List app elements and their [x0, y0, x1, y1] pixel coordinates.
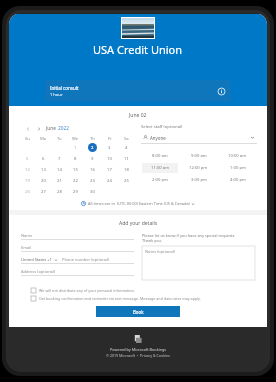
button[interactable]: 17 [105, 165, 114, 174]
button[interactable]: 16 [88, 165, 97, 174]
staticText: 29 [73, 189, 78, 195]
button[interactable]: Book [96, 306, 180, 317]
staticText: 11 [124, 156, 129, 162]
button[interactable]: 29 [71, 187, 80, 196]
button[interactable]: 11:00 am [142, 163, 178, 173]
button[interactable]: 1:00 pm [219, 163, 256, 173]
button[interactable]: 18 [122, 165, 131, 174]
button[interactable]: Previous month [23, 124, 32, 133]
button[interactable]: 23 [88, 176, 97, 185]
staticText: 9:00 am [191, 153, 207, 159]
button[interactable]: 10 [105, 154, 114, 163]
button[interactable]: 3:00 pm [180, 175, 217, 185]
button[interactable]: Next month [34, 124, 43, 133]
button[interactable]: 3 [105, 143, 114, 152]
staticText: 18 [124, 167, 129, 173]
staticText: 11:00 am [151, 165, 170, 171]
button[interactable]: 8:00 am [142, 151, 178, 161]
button[interactable]: Notes (optional) [142, 246, 255, 280]
button[interactable]: 24 [105, 176, 114, 185]
button[interactable]: Get booking confirmation and reminder vi… [21, 296, 255, 301]
staticText: Email [21, 245, 32, 250]
staticText: Phone number (optional) [62, 257, 110, 262]
staticText: 10:00 am [228, 153, 247, 159]
button[interactable]: 30 [88, 187, 97, 196]
staticText: 17 [107, 167, 112, 173]
button[interactable]: We will not distribute any of your perso… [21, 288, 255, 293]
staticText: Add your details [119, 220, 158, 227]
button[interactable]: Anyone [141, 132, 257, 143]
button[interactable]: 4 [122, 143, 131, 152]
staticText: 8 [74, 156, 77, 162]
staticText: 12:00 pm [189, 165, 208, 171]
button[interactable]: 7 [55, 154, 64, 163]
button[interactable]: 12:00 pm [180, 163, 217, 173]
staticText: 1:00 pm [230, 165, 246, 171]
staticText: Notes (optional) [145, 249, 176, 254]
button[interactable]: 15 [71, 165, 80, 174]
staticText: 1 hour [50, 92, 63, 97]
staticText: Th [90, 136, 95, 142]
button[interactable]: 10:00 am [219, 151, 256, 161]
button[interactable]: 25 [122, 176, 131, 185]
button[interactable]: 26 [23, 187, 32, 196]
staticText: 14 [57, 167, 62, 173]
staticText: 10 [107, 156, 112, 162]
staticText: 3:00 pm [191, 177, 207, 183]
button[interactable]: Service information [217, 87, 226, 96]
staticText: 2:00 pm [152, 177, 168, 183]
button[interactable]: 2 [88, 143, 97, 152]
staticText: 27 [41, 189, 46, 195]
button[interactable]: 27 [39, 187, 48, 196]
button[interactable]: Initial consult [45, 80, 231, 102]
button[interactable]: 4:00 pm [219, 175, 256, 185]
button[interactable]: 9 [88, 154, 97, 163]
button[interactable]: 2:00 pm [142, 175, 178, 185]
staticText: Sa [124, 136, 129, 142]
staticText: Fr [108, 136, 112, 142]
staticText: 6 [42, 156, 45, 162]
staticText: 5 [26, 156, 29, 162]
button[interactable]: Address (optional) [21, 269, 134, 276]
button[interactable]: 14 [55, 165, 64, 174]
staticText: Thank you. [142, 238, 163, 243]
staticText: Address (optional) [21, 269, 56, 274]
staticText: 3 [108, 145, 111, 151]
button[interactable]: 11 [122, 154, 131, 163]
button[interactable]: Name [21, 233, 134, 240]
button[interactable]: 1 [71, 143, 80, 152]
staticText: 2 [91, 145, 94, 151]
staticText: 21 [57, 178, 62, 184]
button[interactable]: 13 [39, 165, 48, 174]
staticText: 26 [25, 189, 30, 195]
staticText: Please let us know if you have any speci… [142, 233, 236, 238]
staticText: Mo [40, 136, 47, 142]
staticText: 22 [73, 178, 78, 184]
button[interactable]: 8 [71, 154, 80, 163]
button[interactable]: 19 [23, 176, 32, 185]
staticText: All times are in (UTC-05:00) Eastern Tim… [88, 201, 190, 206]
staticText: June 02 [129, 112, 147, 119]
button[interactable]: 9:00 am [180, 151, 217, 161]
staticText: USA Credit Union [93, 42, 183, 57]
staticText: Anyone [150, 135, 250, 141]
staticText: We [72, 136, 79, 142]
staticText: 24 [107, 178, 112, 184]
staticText: Book [133, 309, 144, 315]
staticText: 13 [41, 167, 46, 173]
button[interactable]: Email [21, 245, 134, 252]
staticText: June [46, 125, 56, 132]
button[interactable]: 20 [39, 176, 48, 185]
staticText: 8:00 am [152, 153, 168, 159]
staticText: 16 [90, 167, 95, 173]
button[interactable]: 22 [71, 176, 80, 185]
staticText: 30 [90, 189, 95, 195]
staticText: 4 [125, 145, 128, 151]
staticText: 19 [25, 178, 30, 184]
button[interactable]: 28 [55, 187, 64, 196]
button[interactable]: 6 [39, 154, 48, 163]
button[interactable]: 21 [55, 176, 64, 185]
staticText: 28 [57, 189, 62, 195]
button[interactable]: 5 [23, 154, 32, 163]
button[interactable]: 12 [23, 165, 32, 174]
